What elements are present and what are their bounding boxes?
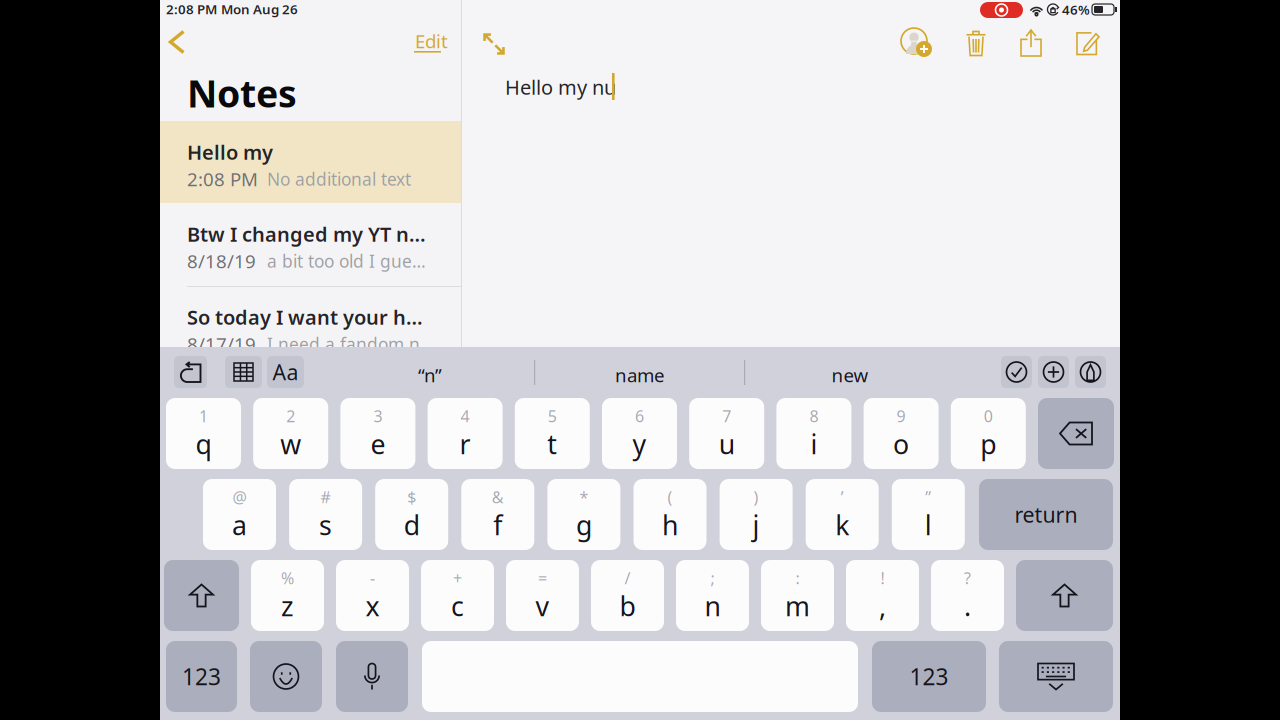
button[interactable]: 4 <box>428 398 503 469</box>
button[interactable]: 0 <box>951 398 1026 469</box>
button[interactable]: Shift <box>164 560 239 631</box>
button[interactable]: ; <box>676 560 749 631</box>
button[interactable]: Undo <box>174 356 207 388</box>
button[interactable]: 2 <box>253 398 328 469</box>
staticText: 5 <box>548 405 557 427</box>
staticText: . <box>964 588 971 624</box>
staticText: @ <box>232 486 246 508</box>
staticText: “n” <box>418 363 442 387</box>
staticText: e <box>370 426 385 462</box>
staticText: b <box>619 588 635 624</box>
staticText: r <box>460 426 471 462</box>
staticText: z <box>281 588 294 624</box>
staticText: , <box>879 588 886 624</box>
staticText: j <box>753 507 760 543</box>
button[interactable]: Delete <box>958 25 994 61</box>
button[interactable]: Dictate <box>336 641 408 712</box>
button[interactable]: Backspace <box>1038 398 1114 469</box>
staticText: k <box>835 507 849 543</box>
staticText: 6 <box>635 405 644 427</box>
button[interactable]: $ <box>375 479 448 550</box>
button[interactable]: 1 <box>166 398 241 469</box>
button[interactable] <box>979 479 1113 550</box>
staticText: Btw I changed my YT n… <box>187 221 426 247</box>
button[interactable]: 9 <box>864 398 939 469</box>
button[interactable]: ’ <box>806 479 879 550</box>
staticText: d <box>404 507 420 543</box>
button[interactable]: @ <box>203 479 276 550</box>
staticText: 3 <box>373 405 382 427</box>
staticText: x <box>365 588 379 624</box>
button[interactable]: Markup <box>1075 356 1106 388</box>
button[interactable] <box>166 641 237 712</box>
staticText: t <box>547 426 557 462</box>
staticText: - <box>370 567 375 589</box>
button[interactable]: : <box>761 560 834 631</box>
button[interactable]: Edit <box>412 23 464 59</box>
button[interactable]: ” <box>892 479 965 550</box>
staticText: Hello my <box>187 139 273 165</box>
button[interactable]: ! <box>846 560 919 631</box>
button[interactable]: Emoji <box>250 641 322 712</box>
button[interactable]: Add People <box>899 24 937 62</box>
button[interactable]: Back <box>157 22 197 62</box>
button[interactable]: & <box>461 479 534 550</box>
button[interactable]: / <box>591 560 664 631</box>
staticText: * <box>579 486 588 508</box>
staticText: 1 <box>199 405 208 427</box>
staticText: 2 <box>286 405 295 427</box>
button[interactable]: Checklist <box>1001 356 1032 388</box>
button[interactable]: Insert <box>1038 356 1069 388</box>
staticText: ” <box>925 486 931 508</box>
staticText: o <box>893 426 909 462</box>
staticText: 8 <box>809 405 818 427</box>
button[interactable]: + <box>421 560 494 631</box>
button[interactable]: * <box>547 479 620 550</box>
button[interactable]: Text Format <box>267 356 304 388</box>
button[interactable]: - <box>336 560 409 631</box>
button[interactable]: Hello my <box>160 121 461 203</box>
button[interactable]: 8 <box>776 398 851 469</box>
staticText: w <box>280 426 301 462</box>
button[interactable]: = <box>506 560 579 631</box>
staticText: So today I want your h… <box>187 304 423 330</box>
staticText: ! <box>880 567 884 589</box>
button[interactable]: 6 <box>602 398 677 469</box>
staticText: a bit too old I gue… <box>267 249 426 272</box>
button[interactable]: Btw I changed my YT n… <box>160 203 461 285</box>
button[interactable] <box>872 641 986 712</box>
button[interactable]: 7 <box>689 398 764 469</box>
button[interactable]: So today I want your h… <box>160 286 461 368</box>
button[interactable]: 3 <box>340 398 415 469</box>
button[interactable]: Compose <box>1070 25 1106 61</box>
button[interactable]: 5 <box>515 398 590 469</box>
staticText: n <box>704 588 720 624</box>
staticText: h <box>662 507 678 543</box>
button[interactable]: Share <box>1013 25 1049 61</box>
staticText: Hello my nu <box>505 74 616 100</box>
button[interactable]: # <box>289 479 362 550</box>
staticText: ) <box>754 486 759 508</box>
button[interactable]: % <box>251 560 324 631</box>
button[interactable]: Shift <box>1016 560 1113 631</box>
staticText: + <box>453 567 462 589</box>
button[interactable]: Hide Keyboard <box>999 641 1113 712</box>
button[interactable]: ? <box>931 560 1004 631</box>
staticText: 8/17/19 <box>187 332 256 356</box>
staticText: ; <box>710 567 714 589</box>
staticText: name <box>615 363 665 387</box>
staticText: Mon Aug 26 <box>221 0 298 18</box>
staticText: return <box>1014 500 1077 529</box>
staticText: 46% <box>1062 1 1090 18</box>
staticText: c <box>451 588 464 624</box>
staticText: p <box>980 426 996 462</box>
staticText: 0 <box>984 405 993 427</box>
staticText: 4 <box>461 405 470 427</box>
staticText: $ <box>407 486 416 508</box>
button[interactable]: ( <box>633 479 706 550</box>
button[interactable]: Insert Table <box>225 356 262 388</box>
button[interactable]: Expand Note <box>479 29 509 59</box>
button[interactable]: ) <box>720 479 793 550</box>
staticText: 8/18/19 <box>187 249 256 273</box>
